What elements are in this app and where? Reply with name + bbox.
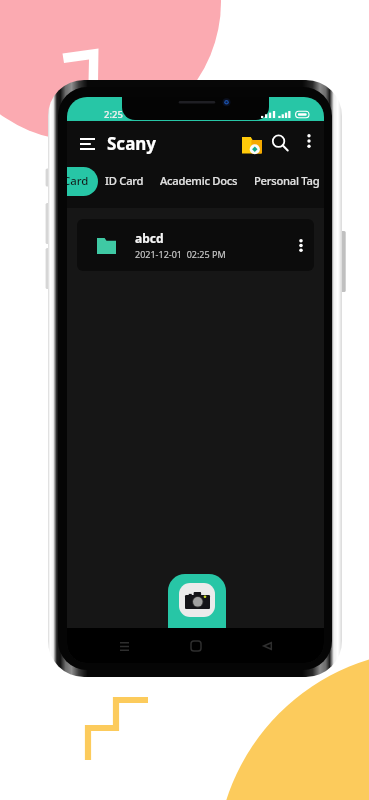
button[interactable]: Menu <box>75 131 100 156</box>
staticText: ID Card <box>105 173 144 188</box>
staticText: Academic Docs <box>160 173 238 188</box>
button[interactable]: Home <box>181 631 211 661</box>
button[interactable]: Card <box>67 167 98 196</box>
button[interactable]: Personal Tag <box>254 167 324 196</box>
button[interactable]: Academic Docs <box>160 167 324 196</box>
button[interactable]: Scan document <box>168 574 226 629</box>
staticText: Card <box>67 173 89 189</box>
button[interactable]: Search <box>267 130 293 156</box>
staticText: Scany <box>107 132 157 155</box>
staticText: abcd <box>135 230 164 246</box>
button[interactable]: ID Card <box>105 167 324 196</box>
staticText: 2:25 <box>104 108 123 121</box>
staticText: 2021-12-01 02:25 PM <box>135 248 226 260</box>
button[interactable]: Recents <box>109 631 139 661</box>
button[interactable]: abcd <box>77 219 314 271</box>
button[interactable]: Folders <box>238 130 266 158</box>
staticText: Personal Tag <box>254 173 320 188</box>
button[interactable]: Back <box>252 631 282 661</box>
button[interactable]: Item options <box>293 232 309 258</box>
button[interactable]: More options <box>298 130 320 152</box>
